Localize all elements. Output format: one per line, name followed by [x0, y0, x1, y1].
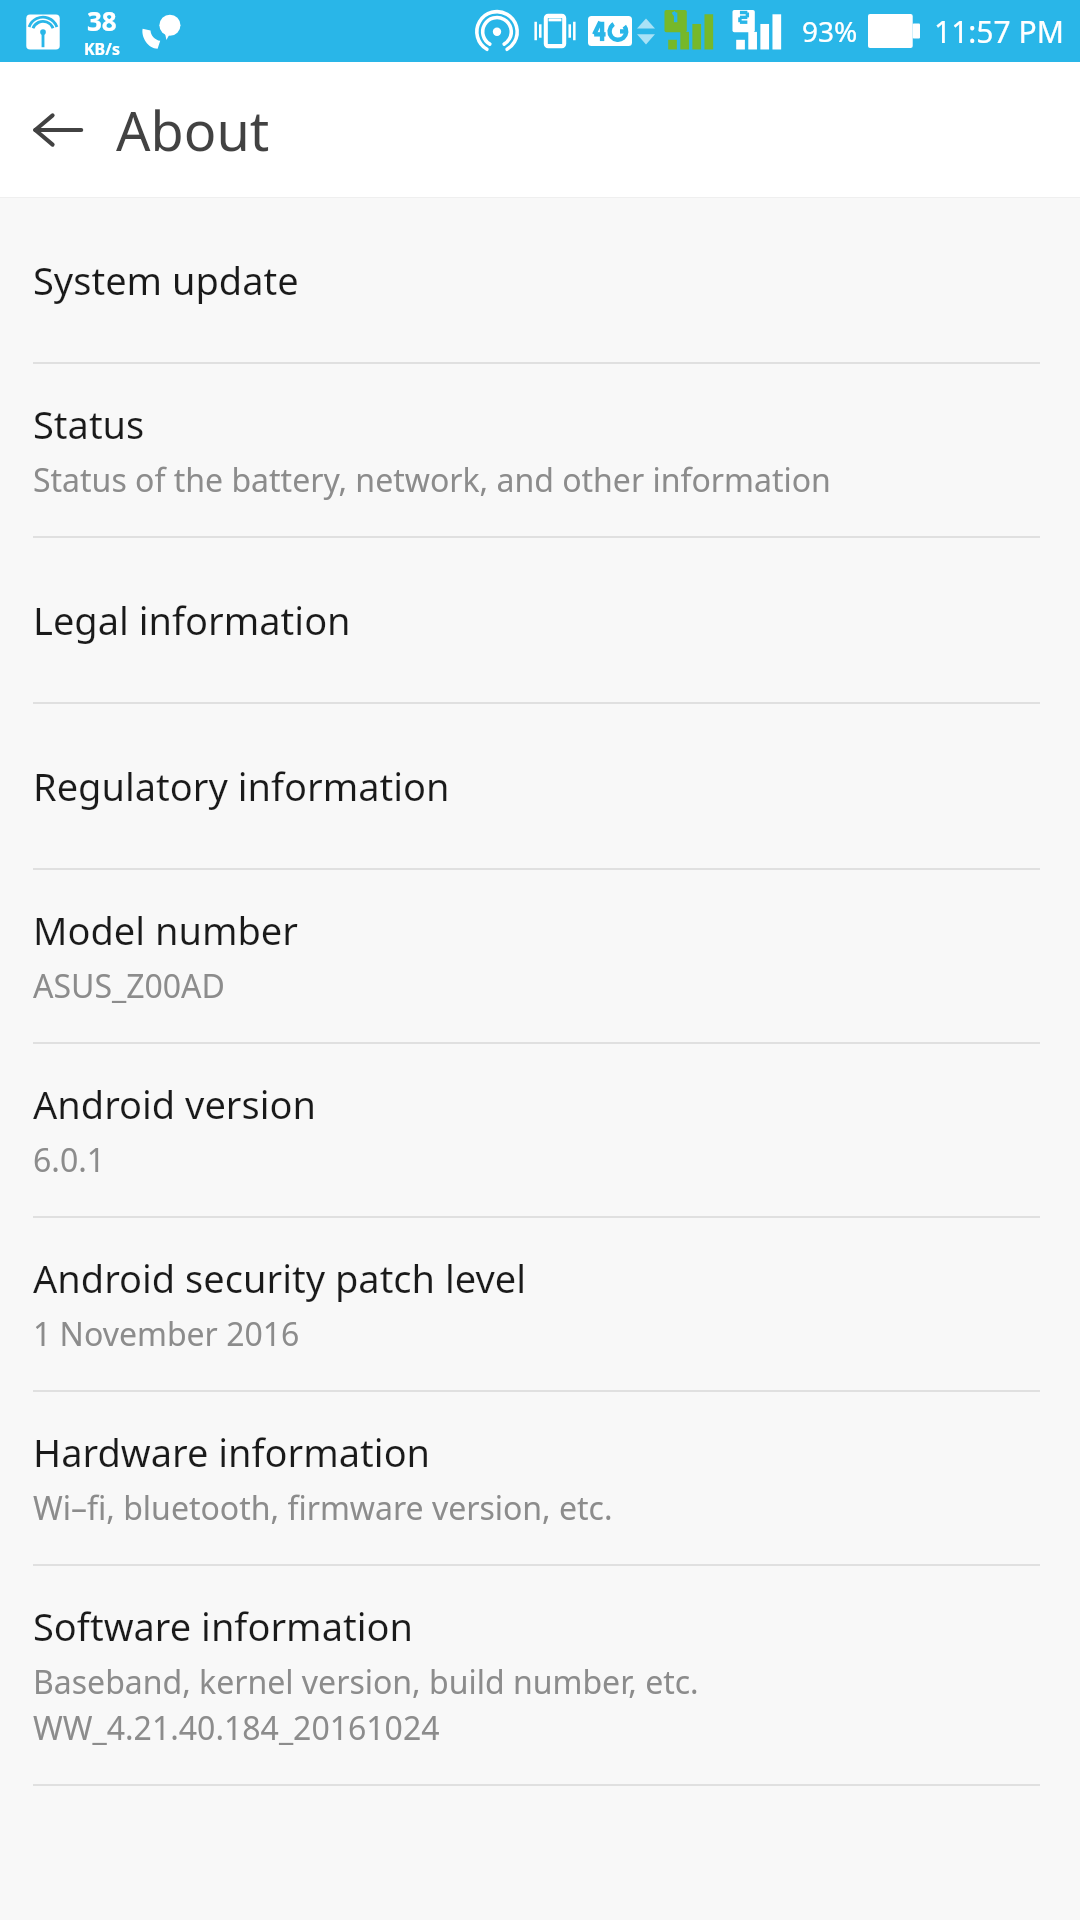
button[interactable]: Hardware information — [0, 1392, 1080, 1564]
staticText: Regulatory information — [33, 760, 450, 812]
staticText: Hardware information — [33, 1426, 431, 1478]
staticText: About — [116, 93, 270, 167]
staticText: Status — [33, 398, 145, 450]
staticText: Android security patch level — [33, 1252, 526, 1304]
button[interactable]: Software information — [0, 1566, 1080, 1784]
staticText: 11:57 PM — [934, 11, 1064, 52]
button[interactable]: System update — [0, 198, 1080, 362]
staticText: Baseband, kernel version, build number, … — [33, 1660, 699, 1704]
button[interactable]: Status — [0, 364, 1080, 536]
staticText: Wi–fi, bluetooth, firmware version, etc. — [33, 1486, 613, 1530]
staticText: Android version — [33, 1078, 317, 1130]
button[interactable]: Android version — [0, 1044, 1080, 1216]
staticText: System update — [33, 254, 299, 306]
staticText: 6.0.1 — [33, 1138, 106, 1182]
staticText: Status of the battery, network, and othe… — [33, 458, 831, 502]
staticText: KB/s — [84, 38, 120, 60]
staticText: ASUS_Z00AD — [33, 964, 225, 1008]
staticText: Model number — [33, 904, 298, 956]
staticText: 93% — [802, 12, 858, 50]
staticText: WW_4.21.40.184_20161024 — [33, 1706, 440, 1750]
button[interactable]: Regulatory information — [0, 704, 1080, 868]
staticText: 38 — [87, 3, 117, 38]
button[interactable]: Android security patch level — [0, 1218, 1080, 1390]
staticText: Legal information — [33, 594, 351, 646]
button[interactable]: Legal information — [0, 538, 1080, 702]
button[interactable]: Model number — [0, 870, 1080, 1042]
staticText: 1 November 2016 — [33, 1312, 300, 1356]
button[interactable]: Back — [18, 90, 98, 170]
staticText: Software information — [33, 1600, 413, 1652]
